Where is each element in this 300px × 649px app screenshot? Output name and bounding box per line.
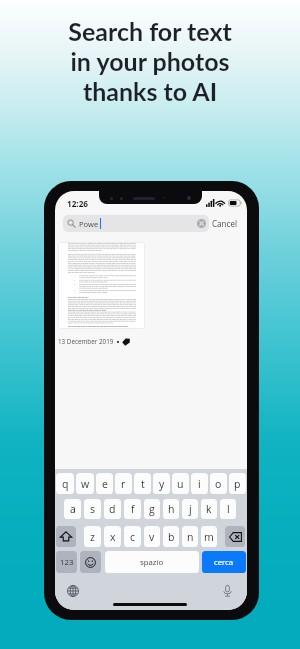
button[interactable] xyxy=(58,242,145,329)
staticText: e xyxy=(102,477,108,491)
button[interactable]: spazio xyxy=(105,551,199,573)
staticText: f xyxy=(131,502,135,516)
button[interactable]: Shift xyxy=(56,526,76,547)
staticText: 13 December 2019 xyxy=(58,337,114,346)
button[interactable]: g xyxy=(144,499,160,519)
staticText: 12:26 xyxy=(67,198,89,209)
staticText: m xyxy=(204,530,214,544)
button[interactable]: z xyxy=(84,526,101,547)
staticText: Powe xyxy=(79,219,99,229)
staticText: w xyxy=(81,477,90,491)
button[interactable]: n xyxy=(182,526,198,547)
button[interactable]: x xyxy=(104,526,121,547)
button[interactable]: 123 xyxy=(56,551,77,573)
button[interactable]: s xyxy=(84,499,101,519)
button[interactable]: q xyxy=(56,473,74,494)
staticText: c xyxy=(130,530,135,544)
button[interactable]: e xyxy=(96,473,113,494)
staticText: z xyxy=(90,530,95,544)
button[interactable]: h xyxy=(163,499,179,519)
button[interactable]: c xyxy=(124,526,141,547)
button[interactable]: r xyxy=(115,473,132,494)
button[interactable]: i xyxy=(191,473,208,494)
staticText: Cancel xyxy=(212,218,238,229)
button[interactable]: j xyxy=(182,499,198,519)
staticText: t xyxy=(141,477,145,491)
button[interactable]: b xyxy=(163,526,179,547)
staticText: u xyxy=(177,477,184,491)
staticText: h xyxy=(168,502,175,516)
button[interactable]: y xyxy=(153,473,170,494)
button[interactable]: f xyxy=(124,499,141,519)
staticText: Search for text in your photos thanks to… xyxy=(0,16,300,106)
staticText: o xyxy=(215,477,222,491)
button[interactable]: m xyxy=(201,526,217,547)
button[interactable]: cerca xyxy=(202,551,246,573)
button[interactable]: u xyxy=(172,473,189,494)
staticText: k xyxy=(206,502,212,516)
button[interactable]: o xyxy=(210,473,227,494)
button[interactable]: p xyxy=(229,473,246,494)
button[interactable]: w xyxy=(76,473,94,494)
staticText: q xyxy=(62,477,69,491)
staticText: l xyxy=(227,502,230,516)
button[interactable]: Cancel xyxy=(212,215,238,232)
staticText: b xyxy=(168,530,175,544)
staticText: n xyxy=(187,530,194,544)
button[interactable]: Backspace xyxy=(225,526,245,547)
button[interactable]: l xyxy=(220,499,236,519)
staticText: y xyxy=(159,477,165,491)
staticText: v xyxy=(149,530,155,544)
button[interactable]: a xyxy=(64,499,81,519)
button[interactable]: Change keyboard xyxy=(64,582,81,599)
staticText: 123 xyxy=(60,557,74,568)
button[interactable]: Dictation xyxy=(219,582,236,599)
staticText: j xyxy=(189,502,192,516)
button[interactable]: t xyxy=(134,473,151,494)
staticText: d xyxy=(109,502,116,516)
button[interactable]: d xyxy=(104,499,121,519)
staticText: x xyxy=(110,530,116,544)
staticText: p xyxy=(234,477,241,491)
staticText: cerca xyxy=(214,557,234,568)
staticText: s xyxy=(90,502,96,516)
button[interactable]: Powe xyxy=(63,215,209,232)
button[interactable]: k xyxy=(201,499,217,519)
staticText: a xyxy=(70,502,76,516)
button[interactable]: Emoji xyxy=(80,551,101,573)
button[interactable]: v xyxy=(144,526,160,547)
staticText: spazio xyxy=(140,557,164,568)
staticText: g xyxy=(149,502,155,516)
staticText: r xyxy=(121,477,126,491)
staticText: i xyxy=(198,477,201,491)
